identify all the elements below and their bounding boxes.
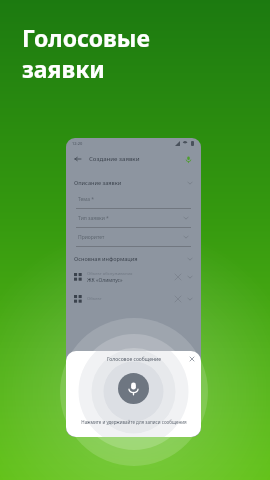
staticText: Объект	[87, 296, 102, 302]
button[interactable]: Тип заявки *	[66, 209, 201, 228]
button[interactable]: Описание заявки	[74, 175, 193, 190]
staticText: 12:20	[72, 141, 83, 146]
button[interactable]: Закрыть	[187, 354, 197, 364]
button[interactable]: Основная информация	[74, 251, 193, 266]
staticText: Тип заявки *	[78, 215, 109, 222]
staticText: Приоритет	[78, 234, 105, 241]
staticText: Основная информация	[74, 255, 138, 262]
button[interactable]: Назад	[73, 154, 83, 164]
button[interactable]: Объект обслуживания	[74, 266, 193, 288]
staticText: Объект обслуживания	[87, 271, 133, 277]
button[interactable]: Приоритет	[66, 228, 201, 247]
button[interactable]: Объект	[74, 288, 193, 310]
staticText: Голосовые	[22, 22, 150, 53]
button[interactable]: Тема *	[66, 190, 201, 209]
staticText: ЖК «Олимпус»	[87, 277, 123, 284]
button[interactable]: Голосовой ввод	[183, 154, 194, 165]
button[interactable]: Записать голосовое сообщение	[118, 373, 149, 404]
staticText: Нажмите и удерживайте для записи сообщен…	[81, 419, 187, 425]
staticText: Тема *	[78, 196, 95, 203]
staticText: Создание заявки	[89, 155, 140, 163]
staticText: Описание заявки	[74, 179, 122, 186]
staticText: заявки	[22, 53, 105, 84]
staticText: Голосовое сообщение	[107, 356, 161, 363]
